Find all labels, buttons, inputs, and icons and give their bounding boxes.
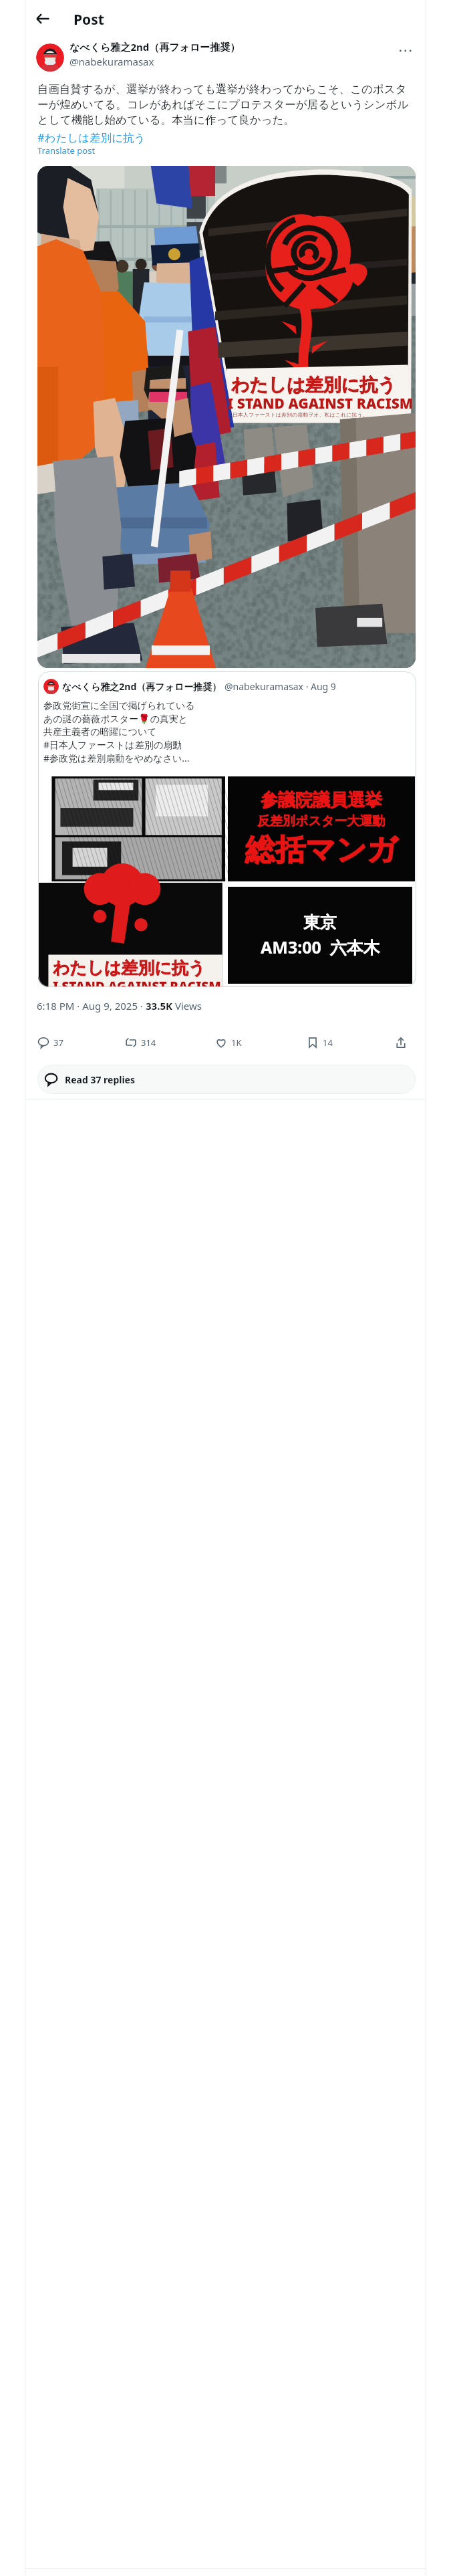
staticText: @nabekuramasax · Aug 9 [224, 680, 336, 693]
button[interactable]: Reply [37, 1031, 63, 1054]
staticText: 東京 [303, 912, 337, 933]
staticText: AM3:00 六本木 [261, 936, 380, 958]
staticText: 自画自賛するが、選挙が終わっても選挙が終わってからこそ、このポスタ ーが煌めいて… [37, 82, 425, 127]
staticText: 33.5K [146, 999, 172, 1012]
staticText: なべくら雅之2nd（再フォロー推奨） [62, 680, 222, 693]
button[interactable]: なべくら雅之2nd（再フォロー推奨） [69, 40, 241, 53]
staticText: Read 37 replies [65, 1073, 135, 1086]
staticText: 日本人ファーストは差別の扇動ヲオ、私はこれに抗う。 [233, 411, 368, 418]
button[interactable]: More options [394, 39, 418, 63]
staticText: わたしは差別に抗う [231, 374, 396, 397]
button[interactable]: Share [395, 1031, 407, 1054]
button[interactable]: なべくら雅之2nd（再フォロー推奨） [38, 671, 416, 987]
button[interactable]: Like [215, 1031, 242, 1054]
staticText: 314 [141, 1037, 156, 1049]
staticText: わたしは差別に抗う [53, 958, 206, 978]
button[interactable]: Back [29, 5, 56, 32]
staticText: 参政党街宣に全国で掲げられている あの謎の薔薇ポスター🌹の真実と 共産主義者の暗… [43, 700, 195, 764]
button[interactable]: #わたしは差別に抗う [37, 130, 146, 145]
staticText: 1K [231, 1037, 242, 1049]
button[interactable]: @nabekuramasax [69, 55, 154, 68]
staticText: 6:18 PM · Aug 9, 2025 · [37, 999, 146, 1012]
staticText: Post [73, 10, 104, 29]
button[interactable]: Profile picture [36, 43, 64, 72]
staticText: 反差別ポスター大運動 [257, 813, 386, 829]
staticText: 37 [53, 1037, 63, 1049]
button[interactable]: Read 37 replies [37, 1065, 416, 1094]
button[interactable]: Repost [125, 1031, 156, 1054]
staticText: 総括マンガ [245, 831, 398, 869]
staticText: Views [172, 999, 202, 1012]
staticText: 参議院議員選挙 [261, 789, 382, 811]
button[interactable]: Translate post [37, 144, 96, 156]
staticText: I STAND AGAINST RACISM [227, 394, 414, 413]
button[interactable]: Bookmark [307, 1031, 333, 1054]
button[interactable]: Image [37, 166, 416, 668]
staticText: 14 [323, 1037, 333, 1049]
staticText: I STAND AGAINST RACISM [53, 978, 221, 987]
button[interactable]: 6:18 PM · Aug 9, 2025 · [37, 999, 202, 1012]
